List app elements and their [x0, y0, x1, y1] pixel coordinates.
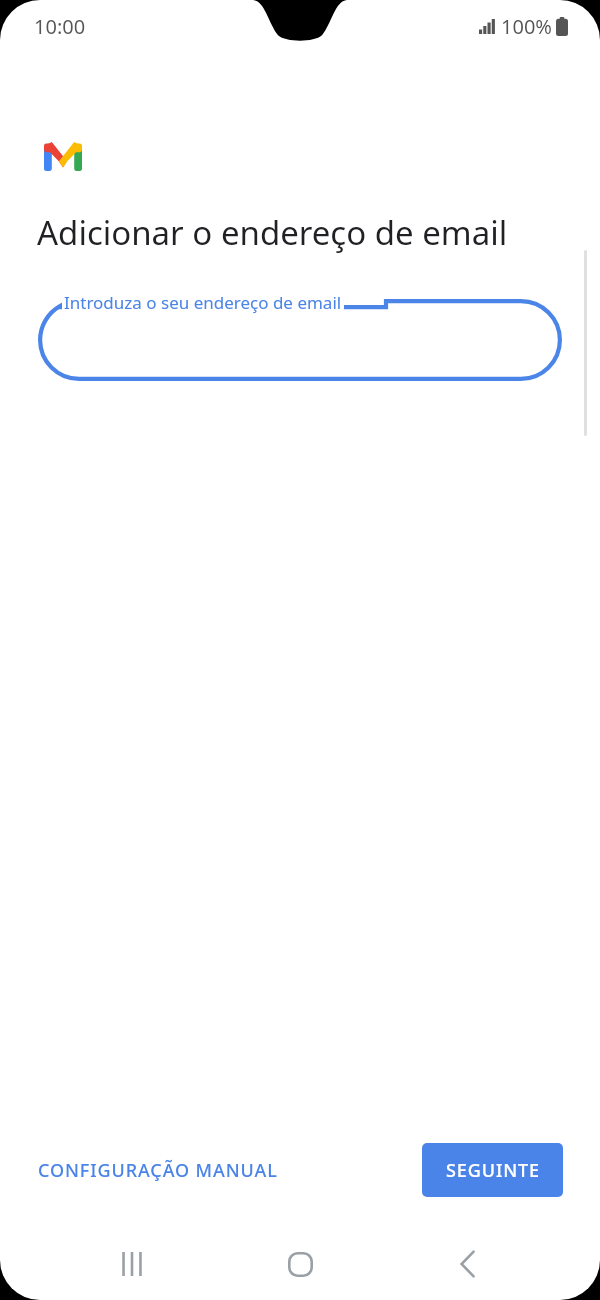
button[interactable] [38, 299, 562, 381]
staticText: 100% [501, 13, 552, 40]
button[interactable]: CONFIGURAÇÃO MANUAL [28, 1150, 288, 1191]
staticText: Adicionar o endereço de email [37, 210, 508, 255]
button[interactable]: SEGUINTE [422, 1143, 563, 1197]
button[interactable]: Recent apps [100, 1232, 164, 1296]
staticText: 10:00 [34, 13, 86, 40]
staticText: CONFIGURAÇÃO MANUAL [38, 1158, 278, 1183]
button[interactable]: Home [268, 1232, 332, 1296]
button[interactable]: Back [436, 1232, 500, 1296]
staticText: Introduza o seu endereço de email [64, 291, 342, 314]
staticText: SEGUINTE [446, 1158, 540, 1183]
